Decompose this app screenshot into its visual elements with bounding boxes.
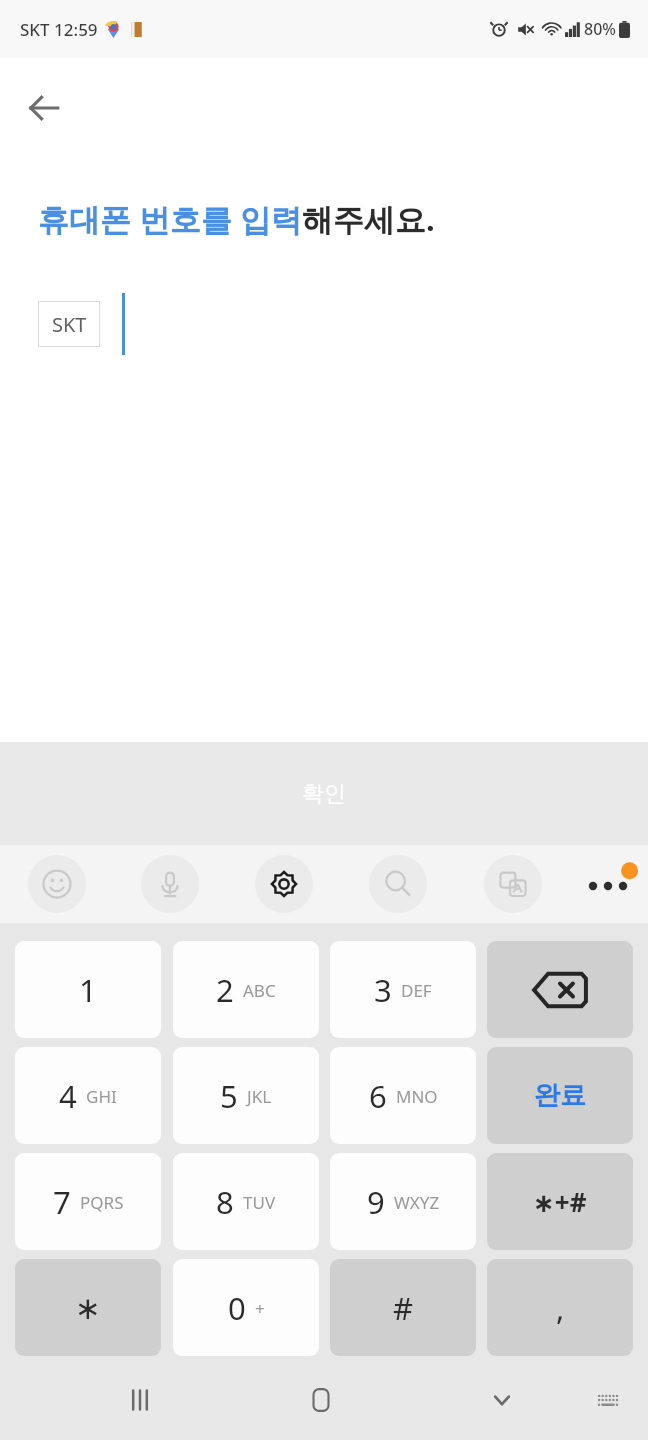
button[interactable]: ∗: [15, 1259, 161, 1356]
staticText: #: [393, 1287, 414, 1329]
button[interactable]: 7: [15, 1153, 161, 1250]
staticText: 80%: [584, 18, 616, 40]
button[interactable]: 1: [15, 941, 161, 1038]
staticText: ABC: [243, 979, 276, 1002]
button[interactable]: 4: [15, 1047, 161, 1144]
staticText: ∗: [75, 1290, 101, 1326]
staticText: SKT: [52, 311, 87, 338]
staticText: MNO: [396, 1085, 438, 1108]
staticText: JKL: [247, 1085, 272, 1108]
staticText: ∗+#: [533, 1184, 587, 1219]
button[interactable]: Translate: [484, 855, 542, 913]
button[interactable]: 0: [173, 1259, 319, 1356]
staticText: 확인: [302, 780, 346, 808]
button[interactable]: Switch keyboard: [578, 1370, 638, 1430]
button[interactable]: Backspace: [487, 941, 633, 1038]
staticText: 6: [369, 1075, 387, 1117]
button[interactable]: 2: [173, 941, 319, 1038]
staticText: DEF: [401, 979, 432, 1002]
button[interactable]: Search: [369, 855, 427, 913]
button[interactable]: #: [330, 1259, 476, 1356]
staticText: 3: [374, 969, 392, 1011]
button[interactable]: Hide keyboard: [472, 1370, 532, 1430]
staticText: TUV: [243, 1191, 276, 1214]
staticText: 8: [216, 1181, 234, 1223]
button[interactable]: 5: [173, 1047, 319, 1144]
button[interactable]: Back: [12, 76, 76, 140]
button[interactable]: ∗+#: [487, 1153, 633, 1250]
staticText: +: [255, 1297, 265, 1320]
staticText: 4: [59, 1075, 77, 1117]
staticText: GHI: [86, 1085, 117, 1108]
button[interactable]: Recents: [110, 1370, 170, 1430]
staticText: WXYZ: [394, 1191, 440, 1214]
button[interactable]: Home: [291, 1370, 351, 1430]
button[interactable]: Voice input: [141, 855, 199, 913]
staticText: 9: [367, 1181, 385, 1223]
button[interactable]: 완료: [487, 1047, 633, 1144]
staticText: 휴대폰 번호를 입력해주세요.: [38, 198, 435, 240]
button[interactable]: 6: [330, 1047, 476, 1144]
button[interactable]: ,: [487, 1259, 633, 1356]
staticText: 0: [228, 1287, 246, 1329]
button[interactable]: More options: [578, 854, 638, 914]
button[interactable]: SKT: [38, 301, 100, 347]
staticText: 1: [79, 969, 97, 1011]
button[interactable]: Keyboard settings: [255, 855, 313, 913]
button[interactable]: 8: [173, 1153, 319, 1250]
staticText: SKT 12:59: [20, 18, 98, 41]
staticText: 완료: [534, 1079, 586, 1112]
staticText: ,: [556, 1287, 565, 1329]
button[interactable]: Emoji: [28, 855, 86, 913]
button[interactable]: 9: [330, 1153, 476, 1250]
staticText: 7: [53, 1181, 71, 1223]
staticText: 5: [220, 1075, 238, 1117]
staticText: PQRS: [80, 1191, 124, 1214]
staticText: 2: [216, 969, 234, 1011]
button[interactable]: 3: [330, 941, 476, 1038]
